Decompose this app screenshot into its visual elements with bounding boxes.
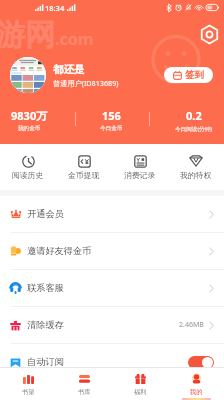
button[interactable]: 9830万: [0, 108, 73, 132]
button[interactable]: 福利: [112, 368, 168, 400]
staticText: 联系客服: [27, 282, 64, 294]
button[interactable]: 联系客服: [0, 270, 224, 306]
staticText: 福利: [134, 388, 147, 396]
button[interactable]: 签到: [164, 67, 213, 83]
staticText: 今日阅读(分钟): [175, 125, 212, 133]
button[interactable]: 书库: [56, 368, 112, 400]
button[interactable]: 156: [67, 108, 155, 132]
button[interactable]: 消费记录: [112, 144, 168, 190]
staticText: 消费记录: [124, 170, 156, 180]
button[interactable]: 我的: [168, 368, 224, 400]
staticText: .com: [55, 28, 94, 50]
button[interactable]: 自动订阅: [0, 344, 224, 380]
staticText: 普通用户(ID813689): [53, 78, 119, 88]
staticText: 今日金币: [100, 125, 123, 132]
button[interactable]: 开通会员: [0, 196, 224, 232]
staticText: 清除缓存: [27, 319, 64, 331]
staticText: 游网: [0, 16, 55, 54]
button[interactable]: 金币提现: [56, 144, 112, 190]
staticText: 0.2: [186, 108, 202, 123]
staticText: 书架: [22, 388, 35, 396]
staticText: 2.46MB: [179, 320, 204, 330]
staticText: 自动订阅: [27, 356, 64, 368]
staticText: 签到: [185, 69, 204, 81]
staticText: 我的金币: [18, 125, 41, 132]
staticText: 邀请好友得金币: [27, 245, 92, 257]
button[interactable]: Settings: [200, 25, 219, 44]
staticText: 开通会员: [27, 208, 64, 220]
staticText: 都还是: [53, 63, 85, 76]
button[interactable]: 邀请好友得金币: [0, 233, 224, 269]
staticText: 18:34: [45, 3, 65, 13]
staticText: 我的特权: [180, 170, 212, 180]
button[interactable]: 阅读历史: [0, 144, 56, 190]
button[interactable]: 清除缓存: [0, 307, 224, 343]
button[interactable]: 书架: [0, 368, 56, 400]
staticText: 书库: [78, 388, 91, 396]
button[interactable]: Toggle auto subscribe: [188, 356, 214, 369]
staticText: 金币提现: [68, 170, 100, 180]
staticText: 我的: [190, 388, 203, 396]
button[interactable]: 0.2: [149, 108, 224, 133]
staticText: 9830万: [11, 108, 48, 123]
staticText: 156: [102, 108, 121, 123]
button[interactable]: 我的特权: [168, 144, 224, 190]
staticText: 阅读历史: [12, 170, 44, 180]
